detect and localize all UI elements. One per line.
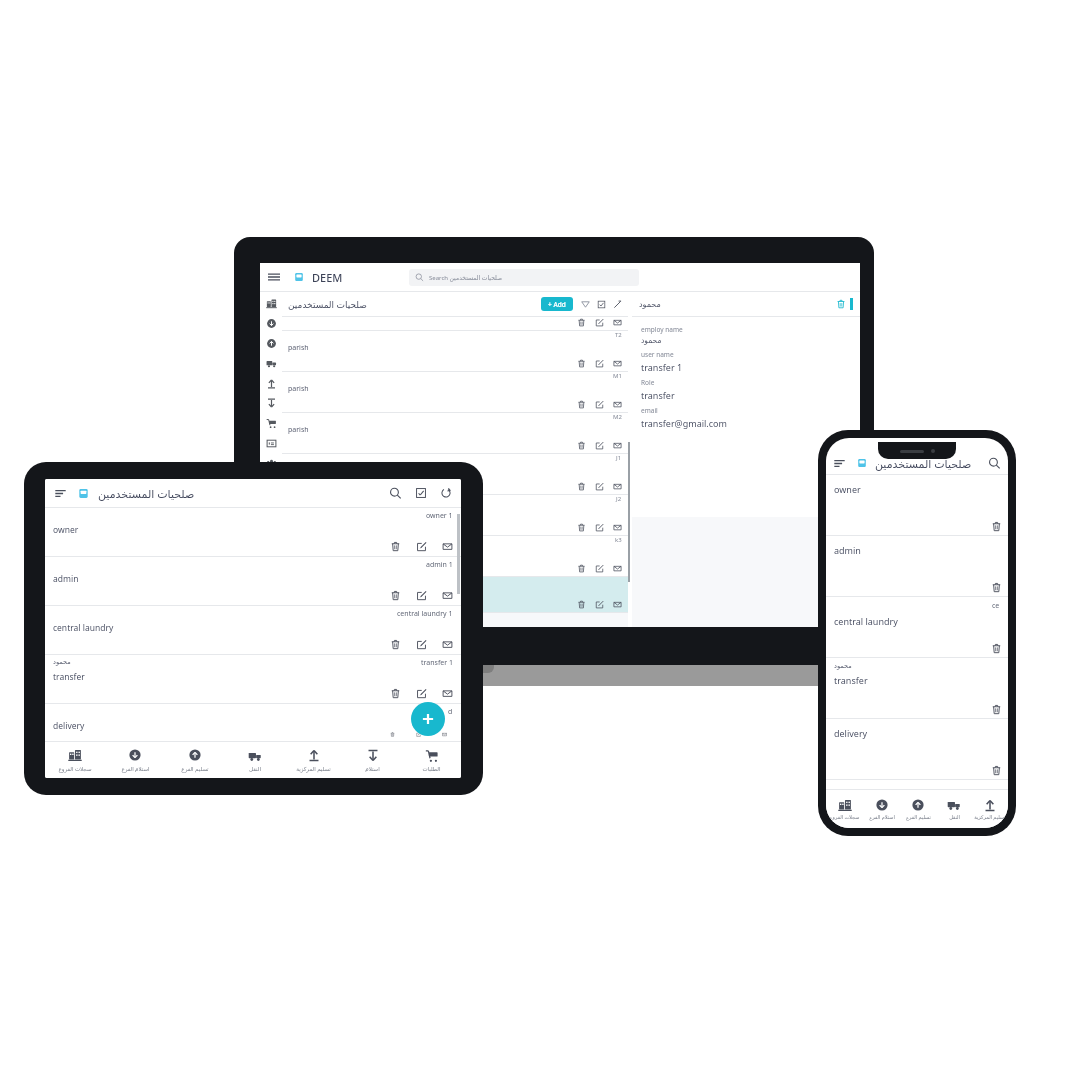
button[interactable]: Mail xyxy=(613,441,622,450)
button[interactable]: استلام الفرع xyxy=(863,790,900,828)
button[interactable]: استلام xyxy=(343,742,402,778)
button[interactable]: admin xyxy=(826,536,1008,597)
button[interactable]: Menu xyxy=(833,457,846,470)
button[interactable]: Delete xyxy=(390,639,401,650)
button[interactable]: M2 xyxy=(282,413,628,454)
button[interactable]: Nav 2 xyxy=(266,338,277,349)
button[interactable]: Edit xyxy=(416,639,427,650)
button[interactable]: Search صلحيات المستخدمين xyxy=(409,269,639,286)
button[interactable]: Edit xyxy=(595,400,604,409)
button[interactable]: owner 1 xyxy=(45,508,461,557)
button[interactable]: تسليم الفرع xyxy=(165,742,225,778)
button[interactable]: Delete xyxy=(390,541,401,552)
button[interactable]: محمود xyxy=(826,658,1008,719)
button[interactable]: k3 xyxy=(282,536,628,577)
button[interactable]: Delete user xyxy=(836,299,846,309)
button[interactable]: Delete xyxy=(390,590,401,601)
button[interactable]: سجلات الفروع xyxy=(45,742,105,778)
button[interactable]: Delete xyxy=(577,564,586,573)
button[interactable]: Edit xyxy=(595,318,604,327)
button[interactable]: M1 xyxy=(282,372,628,413)
button[interactable]: Mail xyxy=(613,482,622,491)
button[interactable]: Select all xyxy=(597,300,606,309)
button[interactable]: Edit xyxy=(416,732,427,737)
button[interactable]: Edit xyxy=(595,359,604,368)
button[interactable]: Mail xyxy=(613,400,622,409)
button[interactable]: Edit xyxy=(595,441,604,450)
button[interactable]: Delete xyxy=(577,400,586,409)
button[interactable]: Delete xyxy=(991,643,1002,654)
button[interactable]: محمود xyxy=(45,655,461,704)
button[interactable]: Delete xyxy=(991,765,1002,776)
button[interactable]: Nav 5 xyxy=(266,398,277,409)
button[interactable]: Delete xyxy=(577,318,586,327)
staticText: delivery xyxy=(834,727,868,739)
button[interactable]: central laundry 1 xyxy=(45,606,461,655)
button[interactable]: Delete xyxy=(390,688,401,699)
button[interactable]: Search xyxy=(988,457,1001,470)
button[interactable]: Add xyxy=(411,702,445,736)
button[interactable]: Nav 8 xyxy=(266,458,277,469)
button[interactable]: Delete xyxy=(991,521,1002,532)
button[interactable]: Expand xyxy=(613,300,622,309)
button[interactable]: Nav 7 xyxy=(266,438,277,449)
button[interactable]: Menu xyxy=(54,487,67,500)
button[interactable]: Mail xyxy=(613,564,622,573)
button[interactable]: Nav 0 xyxy=(266,298,277,309)
staticText: تسليم المركزية xyxy=(296,765,331,772)
button[interactable]: Mail xyxy=(442,732,453,737)
button[interactable]: Search xyxy=(389,487,402,500)
button[interactable]: Mail xyxy=(442,541,453,552)
button[interactable]: Delete xyxy=(577,600,586,609)
button[interactable]: Mail xyxy=(442,590,453,601)
button[interactable]: Delete xyxy=(991,582,1002,593)
button[interactable]: Mail xyxy=(442,688,453,699)
button[interactable]: admin 1 xyxy=(45,557,461,606)
button[interactable]: Edit xyxy=(416,541,427,552)
button[interactable]: Delete xyxy=(577,523,586,532)
button[interactable]: ce xyxy=(826,597,1008,658)
button[interactable]: Mail xyxy=(613,359,622,368)
button[interactable]: Nav 6 xyxy=(266,418,277,429)
staticText: محمود xyxy=(53,658,71,666)
button[interactable]: تسليم الفرع xyxy=(900,790,936,828)
button[interactable]: Nav 1 xyxy=(266,318,277,329)
button[interactable]: Mail xyxy=(613,523,622,532)
button[interactable]: الطلبات xyxy=(402,742,461,778)
button[interactable]: Edit xyxy=(595,600,604,609)
button[interactable]: Delete xyxy=(390,732,401,737)
button[interactable]: d xyxy=(45,704,461,741)
button[interactable]: Menu xyxy=(268,271,280,283)
button[interactable]: تسليم المركزية xyxy=(284,742,343,778)
button[interactable]: T2 xyxy=(282,331,628,372)
button[interactable]: Filter xyxy=(581,300,590,309)
button[interactable]: Edit xyxy=(595,564,604,573)
button[interactable]: Refresh xyxy=(440,487,452,499)
button[interactable]: Delete xyxy=(577,359,586,368)
button[interactable]: Delete xyxy=(991,704,1002,715)
button[interactable]: Edit xyxy=(416,590,427,601)
button[interactable]: Nav 3 xyxy=(266,358,277,369)
button[interactable]: Edit xyxy=(595,482,604,491)
button[interactable]: delivery xyxy=(826,719,1008,780)
button[interactable]: Delete xyxy=(282,577,628,613)
button[interactable]: Mail xyxy=(442,639,453,650)
button[interactable]: Edit xyxy=(416,688,427,699)
button[interactable]: Delete xyxy=(577,482,586,491)
button[interactable]: + Add xyxy=(548,297,566,311)
button[interactable]: النقل xyxy=(225,742,284,778)
button[interactable]: Delete xyxy=(577,441,586,450)
button[interactable]: Nav 4 xyxy=(266,378,277,389)
button[interactable]: Select xyxy=(415,487,427,499)
button[interactable]: Edit xyxy=(595,523,604,532)
button[interactable]: سجلات الفروع xyxy=(826,790,863,828)
button[interactable]: owner xyxy=(826,475,1008,536)
button[interactable]: J2 xyxy=(282,495,628,536)
button[interactable]: Delete xyxy=(282,317,628,331)
button[interactable]: تسليم المركزية xyxy=(972,790,1008,828)
button[interactable]: النقل xyxy=(936,790,972,828)
button[interactable]: Mail xyxy=(613,600,622,609)
button[interactable]: استلام الفرع xyxy=(105,742,165,778)
button[interactable]: Mail xyxy=(613,318,622,327)
button[interactable]: J1 xyxy=(282,454,628,495)
